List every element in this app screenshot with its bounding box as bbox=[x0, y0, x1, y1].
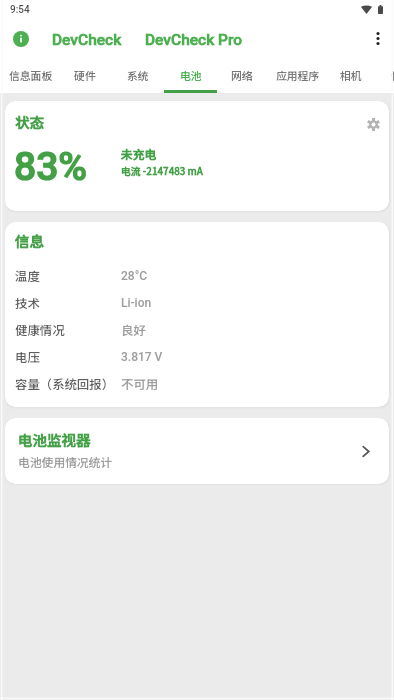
staticText: 应用程序 bbox=[276, 67, 320, 83]
staticText: 不可用 bbox=[121, 375, 159, 393]
staticText: 健康情况 bbox=[15, 321, 65, 339]
staticText: Li-ion bbox=[121, 296, 152, 310]
button[interactable]: More options bbox=[362, 22, 394, 54]
staticText: 信息 bbox=[391, 67, 394, 83]
button[interactable]: 相机 bbox=[325, 58, 377, 93]
button[interactable]: 网络 bbox=[216, 58, 268, 93]
staticText: 电池使用情况统计 bbox=[18, 453, 113, 470]
staticText: DevCheck Pro bbox=[145, 31, 243, 49]
button[interactable]: 电池监视器 bbox=[5, 418, 389, 484]
button[interactable]: 电池 bbox=[164, 58, 217, 93]
staticText: DevCheck bbox=[52, 31, 122, 49]
button[interactable]: 信息 bbox=[376, 58, 394, 93]
button[interactable]: Settings bbox=[359, 110, 387, 138]
staticText: 硬件 bbox=[74, 67, 96, 83]
staticText: 信息 bbox=[15, 230, 44, 251]
staticText: 良好 bbox=[121, 321, 146, 339]
staticText: 技术 bbox=[15, 294, 40, 312]
staticText: 28°C bbox=[121, 269, 148, 283]
staticText: 温度 bbox=[15, 267, 40, 285]
staticText: 电池 bbox=[180, 67, 202, 83]
button[interactable]: App info bbox=[7, 25, 34, 52]
staticText: 系统 bbox=[127, 67, 149, 83]
staticText: 9:54 bbox=[10, 4, 30, 16]
button[interactable]: 信息面板 bbox=[4, 58, 58, 93]
staticText: 相机 bbox=[340, 67, 362, 83]
staticText: 电压 bbox=[15, 348, 40, 366]
staticText: 3.817 V bbox=[121, 350, 163, 364]
staticText: 容量（系统回报） bbox=[15, 375, 115, 393]
staticText: 信息面板 bbox=[9, 67, 53, 83]
button[interactable]: 系统 bbox=[112, 58, 164, 93]
staticText: 83% bbox=[14, 144, 88, 190]
staticText: 状态 bbox=[15, 111, 44, 132]
staticText: 电流 -2147483 mA bbox=[121, 164, 203, 178]
button[interactable]: 应用程序 bbox=[270, 58, 326, 93]
staticText: 未充电 bbox=[121, 145, 157, 162]
staticText: 网络 bbox=[231, 67, 253, 83]
staticText: 电池监视器 bbox=[18, 429, 91, 450]
button[interactable]: 硬件 bbox=[59, 58, 111, 93]
